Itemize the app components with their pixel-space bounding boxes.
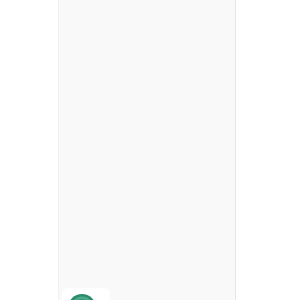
button[interactable]: Profile (68, 294, 96, 300)
button[interactable] (58, 0, 236, 300)
button[interactable]: List item (62, 288, 110, 300)
